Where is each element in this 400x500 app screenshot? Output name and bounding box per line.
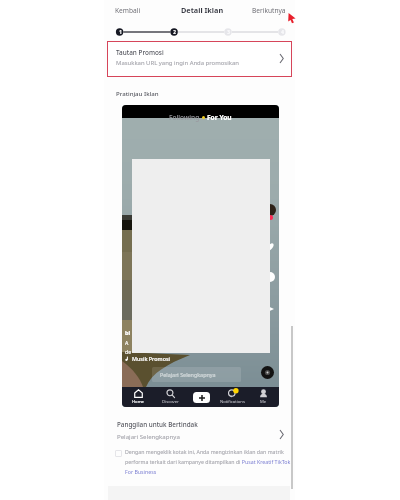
staticText: bl [125, 329, 131, 337]
staticText: Notifications [220, 399, 245, 405]
staticText: For You [207, 113, 232, 122]
staticText: A [125, 339, 129, 346]
button[interactable]: Dengan mengeklik kotak ini, Anda mengizi… [125, 448, 291, 475]
button[interactable]: Setujui [115, 450, 122, 457]
staticText: Home [132, 399, 144, 405]
staticText: Musik Promosi [132, 355, 171, 362]
staticText: Pratinjau Iklan [116, 89, 159, 97]
staticText: Me [260, 399, 267, 405]
button[interactable]: Notifications [217, 389, 248, 405]
staticText: Panggilan untuk Bertindak [117, 420, 198, 429]
staticText: performa terkait dari kampanye ditampilk… [125, 458, 291, 465]
button[interactable]: Panggilan untuk Bertindak [104, 415, 295, 447]
button[interactable]: Discover [154, 389, 186, 405]
staticText: de [125, 348, 132, 355]
staticText: 4 [281, 29, 284, 35]
staticText: Detail Iklan [181, 5, 224, 15]
button[interactable]: Berikutnya [252, 6, 286, 15]
staticText: Discover [162, 399, 179, 405]
staticText: Pelajari Selengkapnya [117, 432, 180, 440]
staticText: Pelajari Selengkapnya [160, 371, 216, 378]
staticText: Tautan Promosi [116, 48, 164, 57]
staticText: 1 [119, 29, 122, 35]
button[interactable]: Me [248, 389, 279, 405]
button[interactable]: Tautan Promosi [107, 41, 292, 77]
staticText: Kembali [115, 6, 141, 15]
button[interactable]: Home [122, 389, 154, 405]
staticText: Masukkan URL yang ingin Anda promosikan [116, 59, 239, 67]
staticText: Berikutnya [252, 6, 286, 15]
staticText: For Business [125, 468, 157, 475]
staticText: Dengan mengeklik kotak ini, Anda mengizi… [125, 448, 284, 455]
button[interactable]: Buat [193, 392, 210, 403]
staticText: Following [169, 113, 200, 122]
button[interactable]: Pelajari Selengkapnya [152, 367, 241, 382]
staticText: 3 [227, 29, 230, 35]
button[interactable]: Kembali [115, 6, 141, 15]
staticText: 2 [173, 29, 176, 35]
